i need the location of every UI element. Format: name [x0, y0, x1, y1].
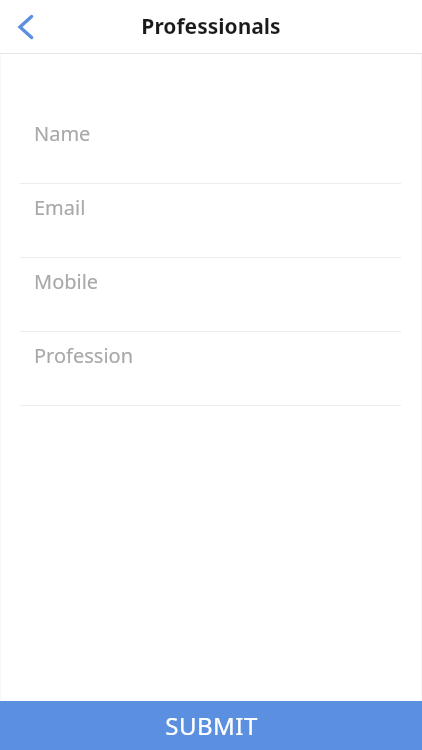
staticText: SUBMIT: [165, 709, 258, 742]
button[interactable]: SUBMIT: [0, 701, 422, 750]
button[interactable]: Email: [0, 184, 422, 258]
button[interactable]: Name: [0, 110, 422, 184]
staticText: Mobile: [34, 268, 99, 295]
button[interactable]: Back: [0, 0, 52, 54]
staticText: Name: [34, 120, 91, 147]
staticText: Profession: [34, 342, 133, 369]
button[interactable]: Mobile: [0, 258, 422, 332]
staticText: Email: [34, 194, 86, 221]
button[interactable]: Profession: [0, 332, 422, 406]
staticText: Professionals: [141, 12, 281, 41]
